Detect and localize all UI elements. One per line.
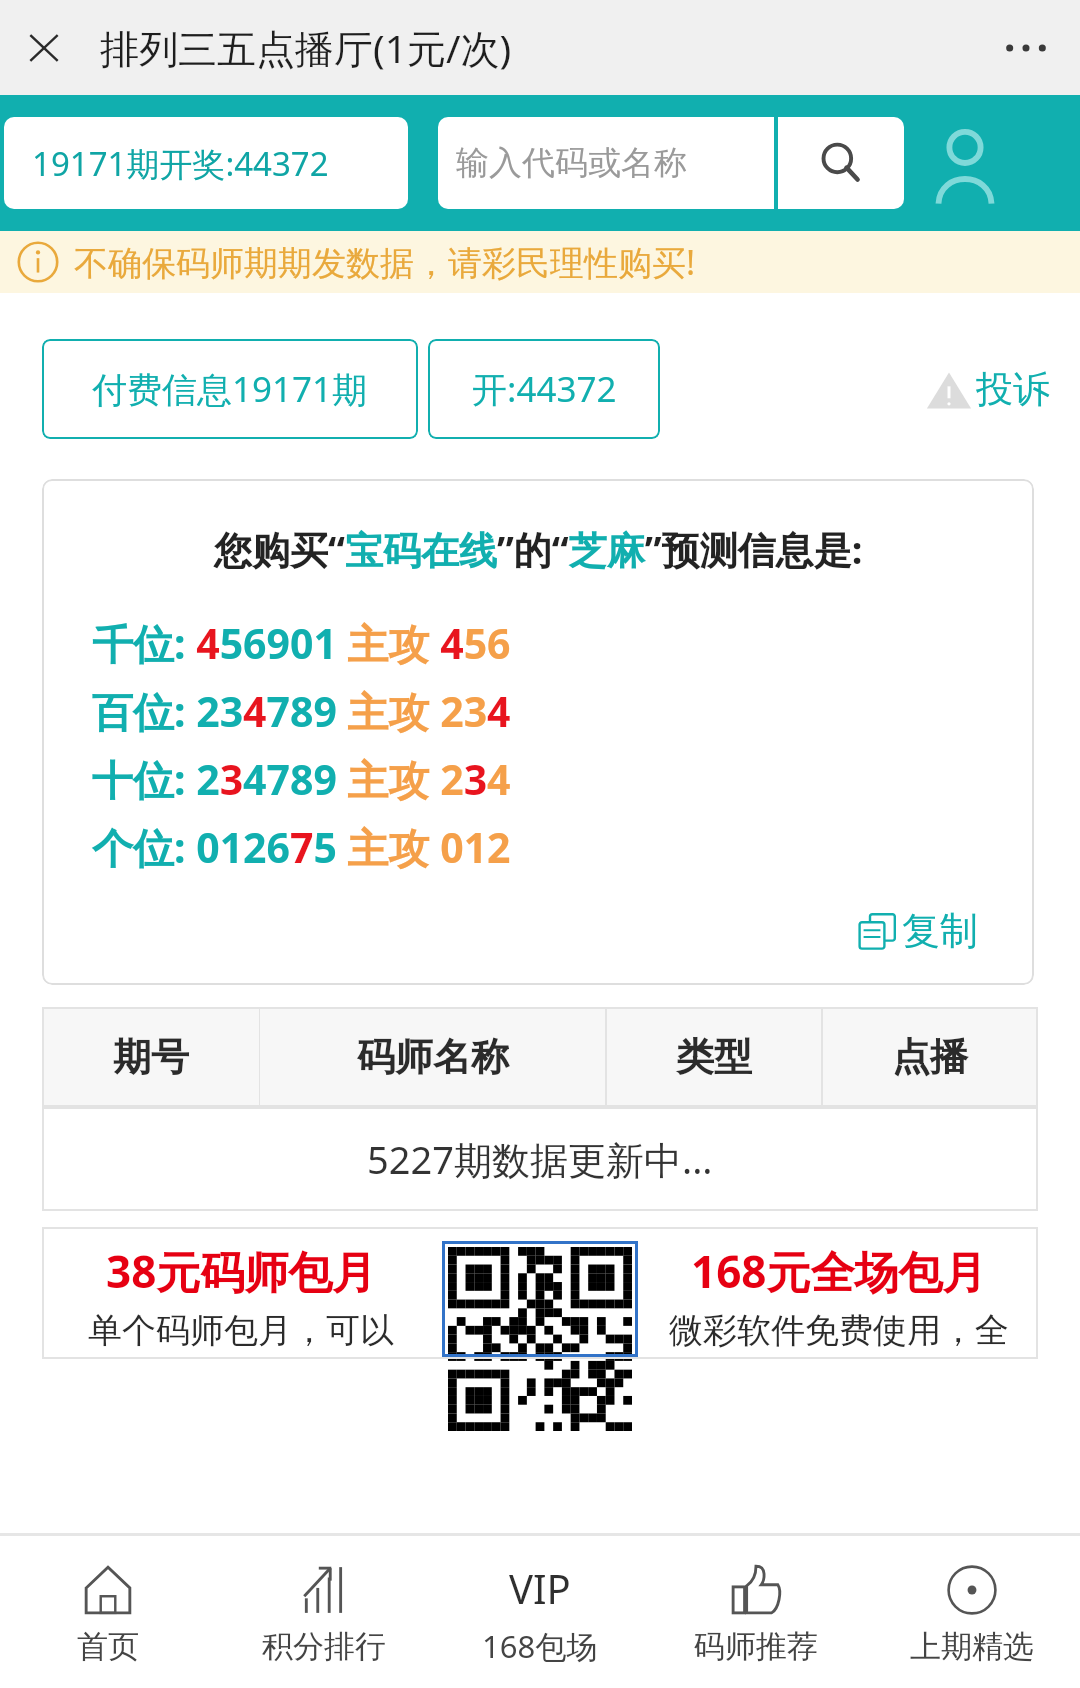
staticText: 排列三五点播厅(1元/次) [100,21,512,74]
staticText: 百位: 234789 主攻 234 [92,683,511,739]
staticText: 不确保码师期期发数据，请彩民理性购买! [74,239,696,285]
button[interactable]: 上期精选 [864,1536,1080,1688]
staticText: 积分排行 [262,1627,386,1666]
staticText: 168包场 [482,1625,598,1667]
staticText: 点播 [892,1033,968,1081]
button[interactable]: 码师名称 [259,1007,606,1107]
staticText: 码师推荐 [694,1627,818,1666]
staticText: 输入代码或名称 [456,142,687,184]
button[interactable]: VIP [432,1536,648,1688]
button[interactable]: 首页 [0,1536,216,1688]
staticText: VIP [509,1561,571,1615]
staticText: 千位: 456901 主攻 456 [92,615,511,671]
button[interactable]: 输入代码或名称 [438,117,774,209]
staticText: 付费信息19171期 [92,365,368,413]
staticText: 19171期开奖:44372 [32,141,329,186]
button[interactable]: 开:44372 [428,339,660,439]
staticText: 期号 [113,1033,189,1081]
button[interactable]: 38元码师包月 [42,1241,440,1352]
staticText: 投诉 [976,366,1050,413]
button[interactable]: Close [16,20,72,76]
button[interactable]: Account [926,124,1004,202]
button[interactable]: 投诉 [922,362,1054,417]
staticText: 上期精选 [910,1627,1034,1666]
staticText: 您购买“宝码在线”的“芝麻”预测信息是: [214,523,863,575]
staticText: 38元码师包月 [106,1241,377,1301]
button[interactable]: More options [994,16,1058,80]
button[interactable]: 码师推荐 [648,1536,864,1688]
staticText: 类型 [676,1033,752,1081]
staticText: 复制 [902,907,978,955]
button[interactable]: 19171期开奖:44372 [4,117,408,209]
staticText: 个位: 012675 主攻 012 [92,819,511,875]
staticText: 十位: 234789 主攻 234 [92,751,511,807]
staticText: 首页 [77,1627,139,1666]
button[interactable]: 积分排行 [216,1536,432,1688]
staticText: 码师名称 [357,1033,509,1081]
button[interactable]: Search [778,117,904,209]
button[interactable]: 期号 [42,1007,259,1107]
staticText: 微彩软件免费使用，全 [669,1309,1009,1352]
button[interactable]: QR code [442,1241,638,1357]
button[interactable]: 点播 [822,1007,1038,1107]
staticText: 168元全场包月 [691,1241,987,1301]
button[interactable]: 复制 [852,901,984,961]
staticText: 单个码师包月，可以 [88,1309,394,1352]
button[interactable]: 168元全场包月 [640,1241,1038,1352]
staticText: 开:44372 [472,365,617,413]
button[interactable]: 付费信息19171期 [42,339,418,439]
staticText: 5227期数据更新中... [367,1133,713,1185]
button[interactable]: 类型 [606,1007,822,1107]
